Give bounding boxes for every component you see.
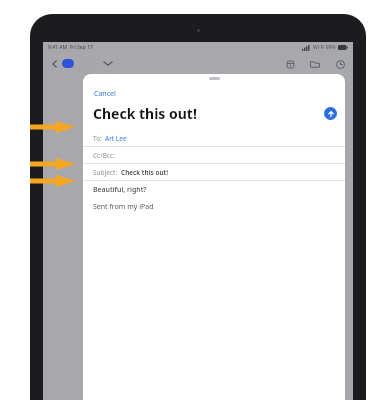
- button[interactable]: Subject:: [83, 164, 345, 181]
- button[interactable]: Delete: [283, 57, 297, 71]
- staticText: Cc/Bcc:: [93, 151, 115, 160]
- staticText: Sent from my iPad: [93, 202, 154, 212]
- staticText: To:: [93, 134, 102, 143]
- button[interactable]: Remind me later: [333, 57, 347, 71]
- staticText: Check this out!: [121, 168, 168, 177]
- button[interactable]: Account: [62, 59, 74, 68]
- button[interactable]: Move to folder: [308, 57, 322, 71]
- staticText: Cancel: [94, 89, 116, 99]
- staticText: Check this out!: [93, 104, 197, 123]
- button[interactable]: Next message: [101, 57, 114, 70]
- button[interactable]: Cc/Bcc:: [83, 147, 345, 164]
- button[interactable]: Send: [324, 107, 337, 120]
- staticText: Art Lee: [105, 134, 127, 143]
- staticText: Beautiful, right?: [93, 185, 147, 195]
- button[interactable]: Cancel: [93, 88, 117, 100]
- staticText: 9:41 AM Fri Sep 17: [48, 44, 93, 51]
- staticText: Subject:: [93, 168, 118, 177]
- button[interactable]: To:: [83, 130, 345, 147]
- staticText: Wi-Fi 99%: [313, 44, 336, 51]
- button[interactable]: Back: [49, 58, 61, 70]
